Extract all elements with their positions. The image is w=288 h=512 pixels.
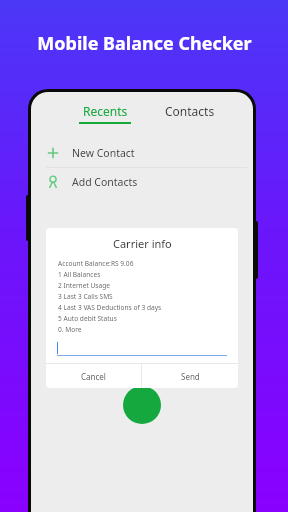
- staticText: 1 All Balances: [58, 270, 101, 279]
- staticText: 0. More: [58, 325, 82, 334]
- staticText: 2 Internet Usage: [58, 281, 110, 290]
- staticText: New Contact: [72, 146, 135, 160]
- staticText: Account Balance:RS 9.06: [58, 259, 134, 268]
- staticText: Add Contacts: [72, 175, 138, 189]
- button[interactable]: 6: [179, 281, 253, 314]
- button[interactable]: 4: [31, 281, 105, 314]
- button[interactable]: *: [31, 347, 105, 380]
- button[interactable]: 8: [105, 314, 179, 347]
- button[interactable]: Recents: [75, 103, 135, 124]
- staticText: 0: [137, 348, 147, 370]
- staticText: Cancel: [81, 371, 106, 382]
- staticText: GHI: [62, 305, 74, 314]
- button[interactable]: 0: [105, 347, 179, 380]
- staticText: 7: [63, 315, 73, 337]
- staticText: 4 Last 3 VAS Deductions of 3 days: [58, 303, 162, 312]
- button[interactable]: Contacts: [161, 103, 219, 119]
- button[interactable]: 9: [179, 314, 253, 347]
- staticText: Mobile Balance Checker: [37, 31, 252, 56]
- button[interactable]: 7: [31, 314, 105, 347]
- staticText: 4: [63, 282, 73, 304]
- staticText: JKL: [137, 305, 147, 314]
- staticText: Contacts: [165, 103, 215, 119]
- staticText: 5 Auto debit Status: [58, 314, 117, 323]
- button[interactable]: #: [179, 347, 253, 380]
- button[interactable]: Add Contacts: [31, 168, 253, 196]
- staticText: Carrier info: [113, 236, 172, 251]
- button[interactable]: Call: [123, 386, 161, 424]
- staticText: *: [64, 348, 73, 370]
- button[interactable]: New Contact: [31, 139, 253, 167]
- staticText: Send: [181, 371, 200, 382]
- staticText: Recents: [83, 103, 128, 119]
- staticText: +: [140, 371, 144, 380]
- button[interactable]: 5: [105, 281, 179, 314]
- staticText: 3 Last 3 Calls SMS: [58, 292, 113, 301]
- button[interactable]: Send: [142, 364, 238, 388]
- staticText: #: [211, 353, 222, 375]
- button[interactable]: Cancel: [46, 364, 141, 388]
